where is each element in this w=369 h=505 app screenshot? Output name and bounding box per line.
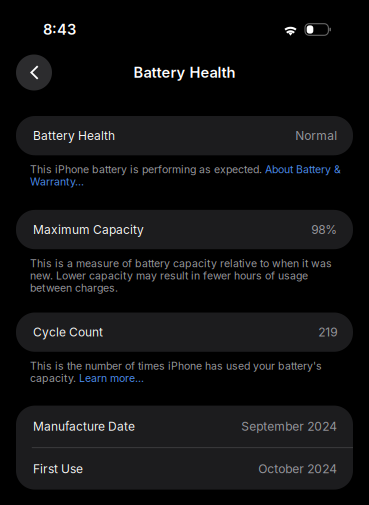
staticText: new. Lower capacity may result in fewer … [30,269,308,282]
button[interactable]: First Use [16,448,353,490]
staticText: Cycle Count [33,325,103,339]
staticText: October 2024 [258,462,337,476]
staticText: Normal [295,128,337,143]
staticText: Warranty... [30,175,84,188]
button[interactable]: Manufacture Date [16,406,353,447]
button[interactable]: Back [16,54,52,90]
staticText: 98% [311,222,337,237]
staticText: capacity. [30,372,76,385]
staticText: About Battery & [262,163,341,176]
staticText: 219 [318,325,337,339]
staticText: Manufacture Date [33,419,135,434]
staticText: Learn more... [76,372,144,385]
staticText: Battery Health [133,64,235,81]
staticText: This is the number of times iPhone has u… [30,360,322,372]
button[interactable]: Cycle Count [16,312,353,352]
staticText: Battery Health [33,128,115,143]
staticText: between charges. [30,282,118,294]
staticText: This is a measure of battery capacity re… [30,257,332,270]
staticText: September 2024 [241,419,337,434]
button[interactable]: Battery Health [16,116,353,155]
staticText: This iPhone battery is performing as exp… [30,163,262,176]
staticText: Maximum Capacity [33,222,144,237]
staticText: First Use [33,462,83,476]
staticText: 8:43 [43,21,76,38]
button[interactable]: Maximum Capacity [16,210,353,249]
